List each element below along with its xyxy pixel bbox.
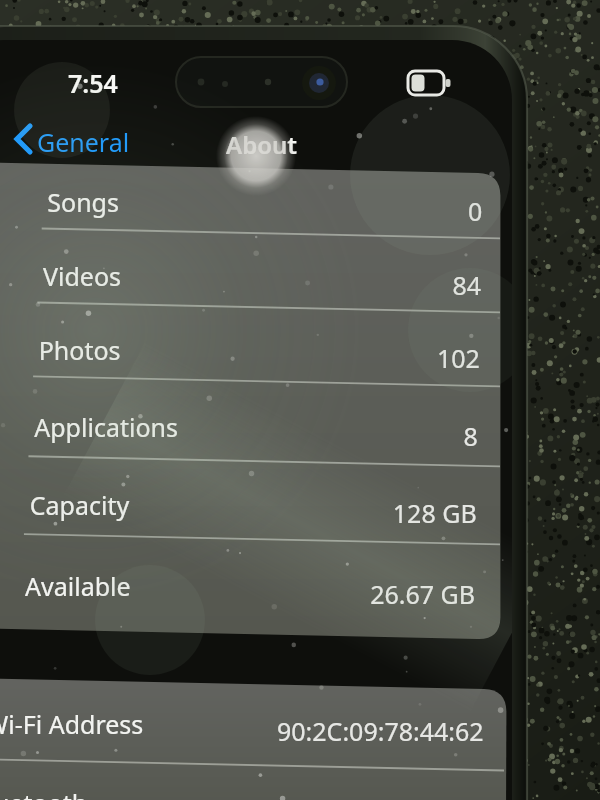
button[interactable]: Photos xyxy=(0,321,500,396)
button[interactable]: Back to General xyxy=(4,118,134,162)
button[interactable]: Wi-Fi Address xyxy=(0,690,506,766)
button[interactable]: Videos xyxy=(0,247,500,322)
button[interactable]: Songs xyxy=(0,172,500,247)
button[interactable]: Available xyxy=(0,552,500,632)
button[interactable]: Applications xyxy=(0,396,500,471)
button[interactable]: Capacity xyxy=(0,473,500,548)
